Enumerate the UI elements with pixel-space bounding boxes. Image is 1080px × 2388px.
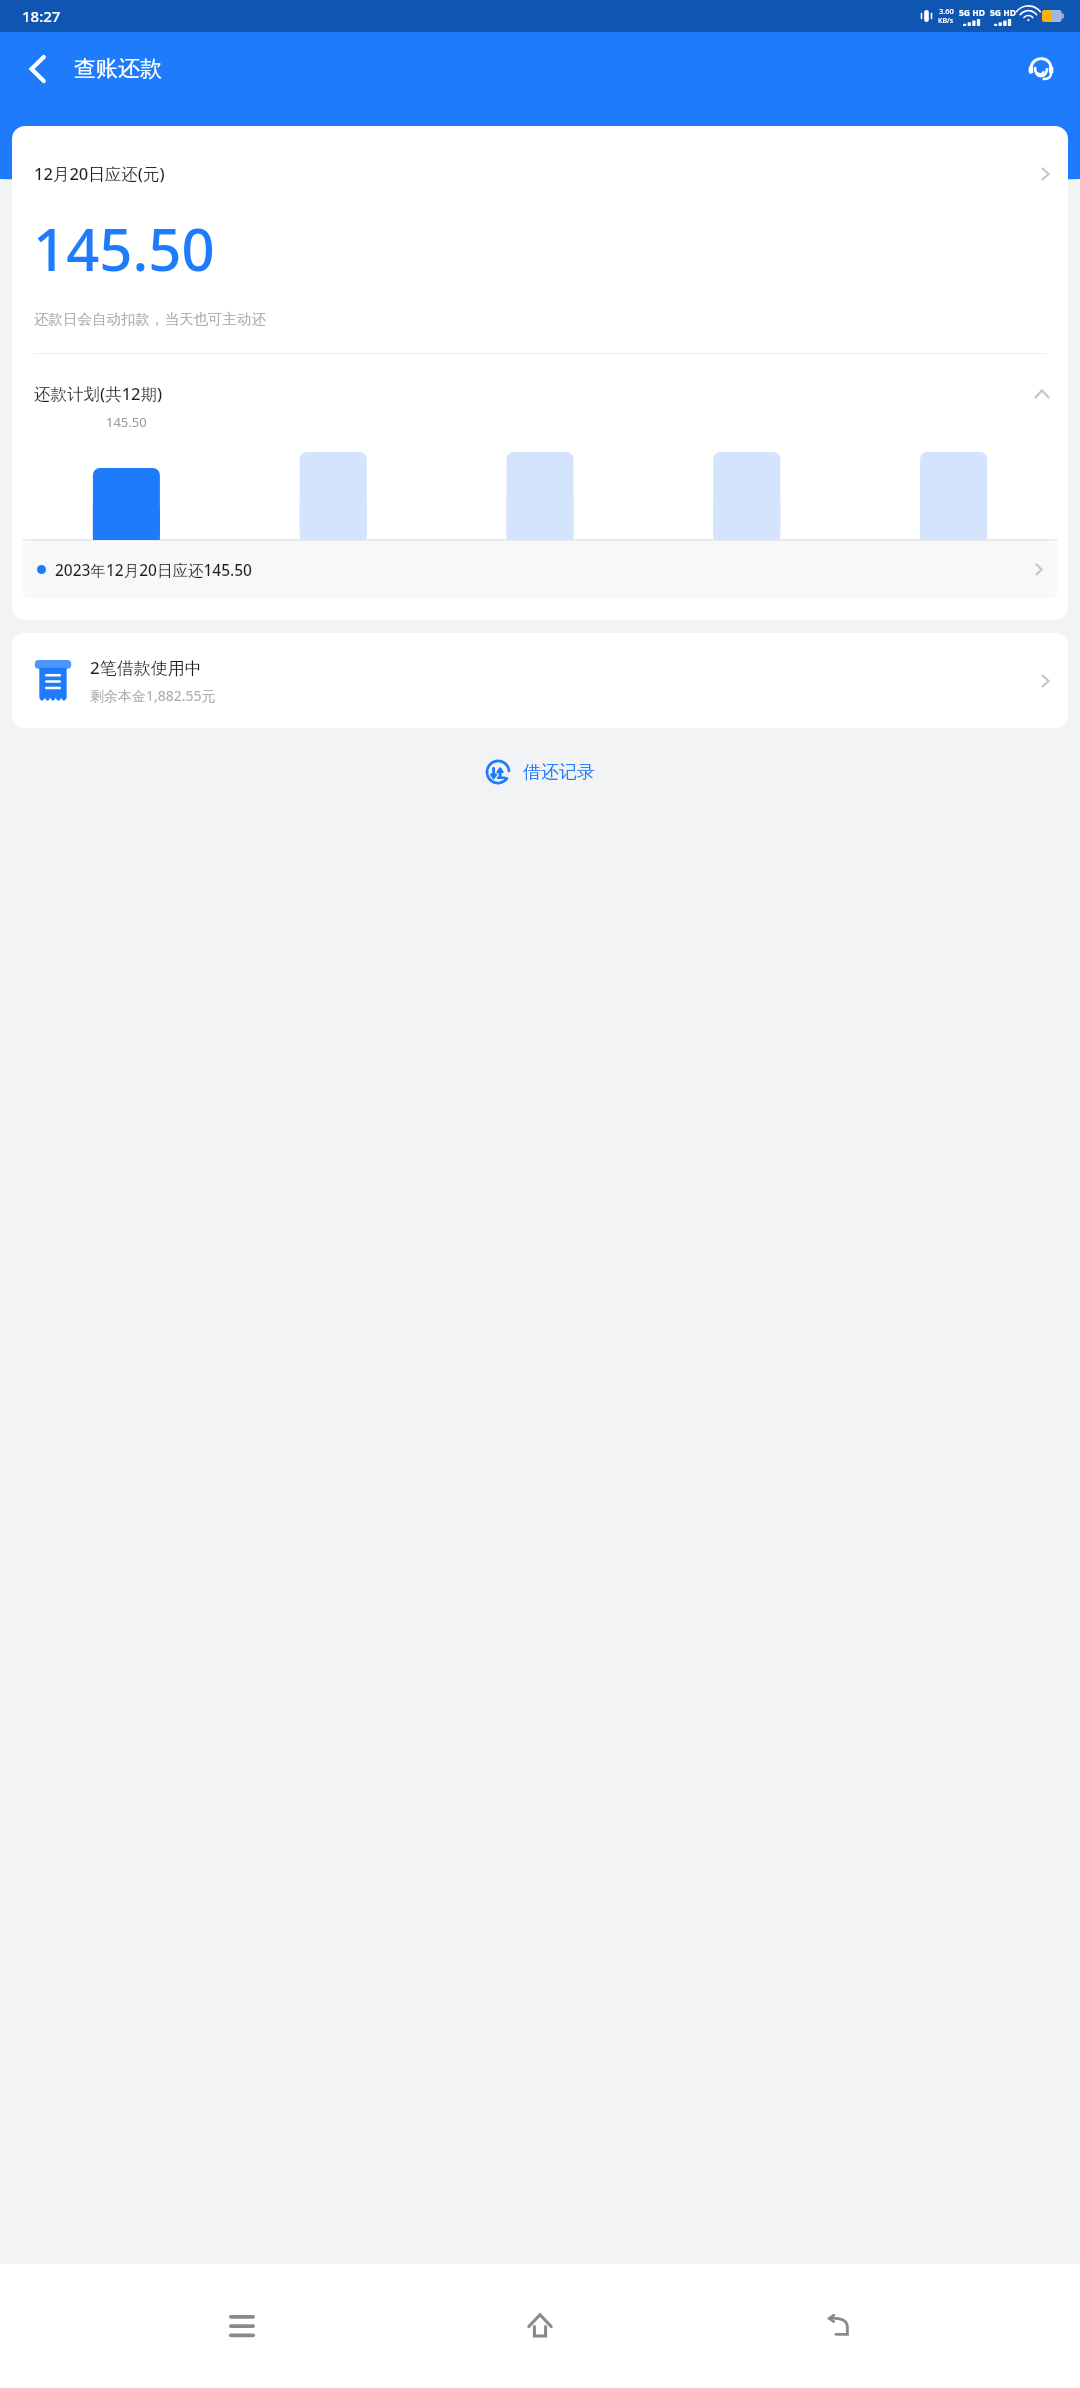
button[interactable]: 12月20日应还(元) xyxy=(12,126,1068,189)
staticText: KB/s xyxy=(938,16,954,26)
staticText: 145.50 xyxy=(33,209,215,288)
staticText: 还款日会自动扣款，当天也可主动还 xyxy=(34,310,266,328)
staticText: 5G HD xyxy=(990,7,1016,19)
button[interactable]: 2笔借款使用中 xyxy=(12,633,1068,728)
staticText: 2023年12月20日应还145.50 xyxy=(55,559,252,580)
button[interactable]: 借还记录 xyxy=(475,753,605,791)
button[interactable]: 2023年12月20日应还145.50 xyxy=(22,541,1058,598)
button[interactable]: Recents xyxy=(207,2291,277,2361)
staticText: 145.50 xyxy=(106,413,147,431)
button[interactable]: Home xyxy=(505,2291,575,2361)
staticText: 剩余本金1,882.55元 xyxy=(90,686,216,705)
staticText: 3.60 xyxy=(939,6,954,16)
staticText: 借还记录 xyxy=(523,761,595,784)
button[interactable]: Back xyxy=(803,2291,873,2361)
button[interactable]: Back xyxy=(18,49,58,89)
staticText: 2笔借款使用中 xyxy=(90,656,202,679)
button[interactable]: Customer service xyxy=(1020,48,1062,90)
staticText: 还款计划(共12期) xyxy=(34,382,163,405)
staticText: 18:27 xyxy=(22,6,61,26)
staticText: 查账还款 xyxy=(74,55,162,83)
staticText: 12月20日应还(元) xyxy=(34,162,165,185)
staticText: 5G HD xyxy=(959,7,985,19)
button[interactable]: 还款计划(共12期) xyxy=(12,354,1068,413)
